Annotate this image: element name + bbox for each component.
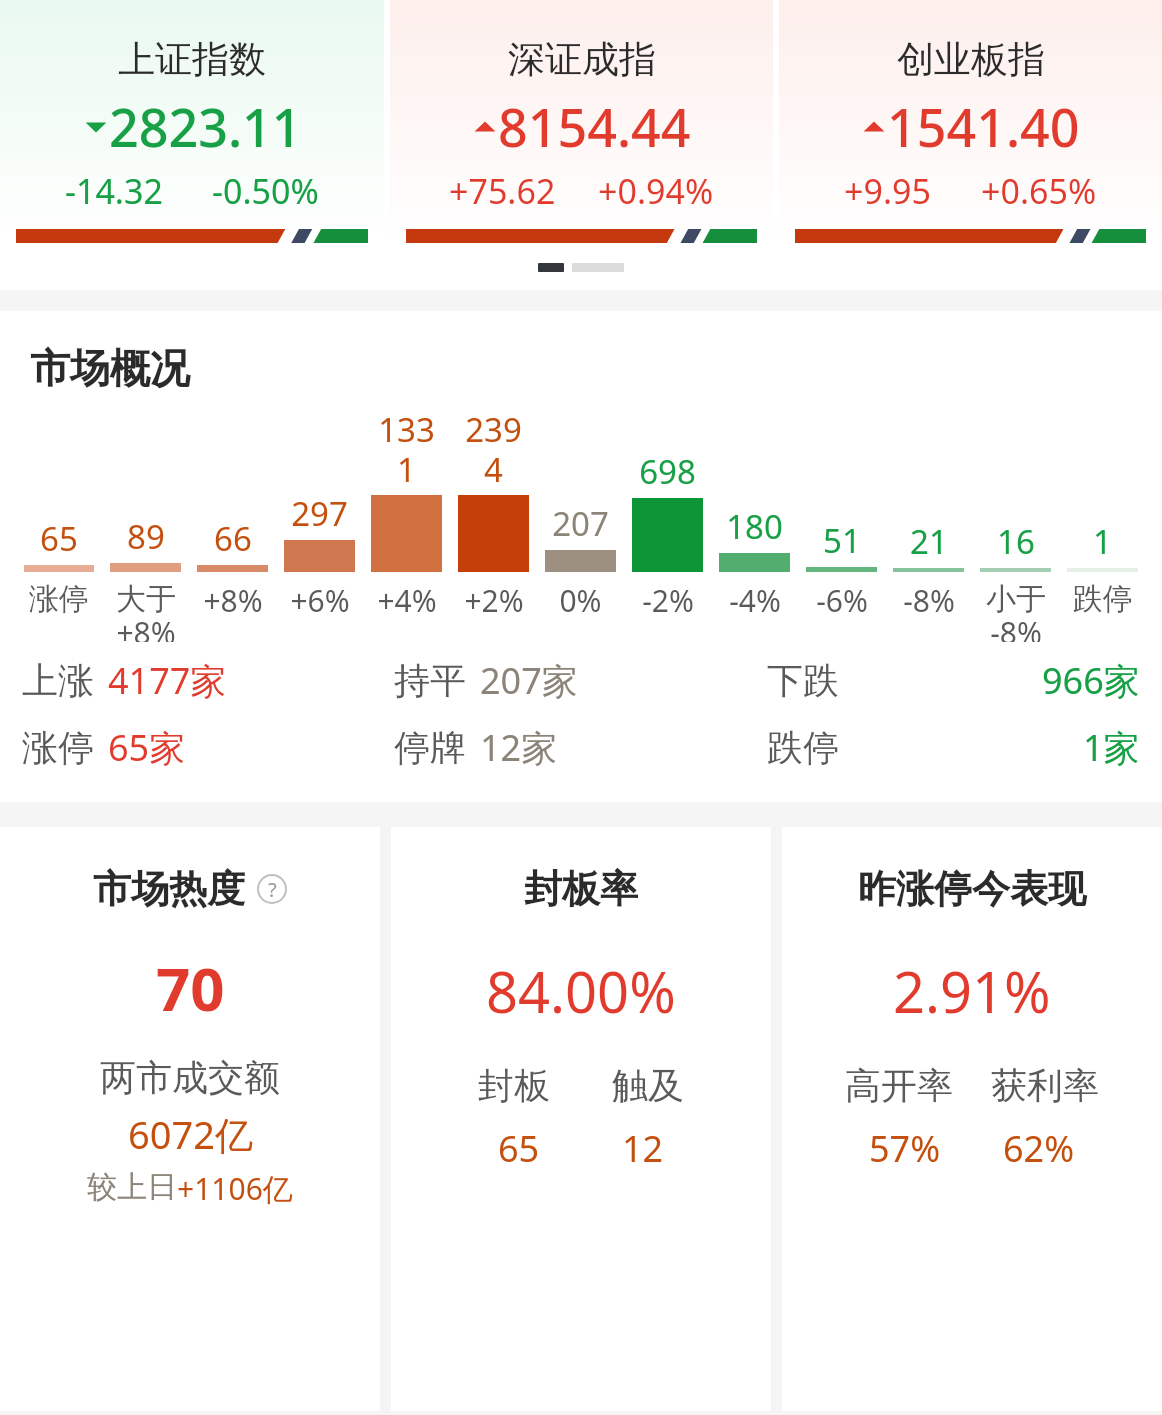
- button[interactable]: 创业板指: [779, 0, 1162, 245]
- staticText: 上涨: [22, 658, 94, 703]
- staticText: -2%: [642, 580, 694, 621]
- staticText: 6072亿: [128, 1108, 253, 1160]
- staticText: 966家: [1042, 656, 1140, 705]
- staticText: +2%: [464, 580, 524, 621]
- button[interactable]: 封板率: [391, 827, 771, 1411]
- button[interactable]: 深证成指: [390, 0, 773, 245]
- staticText: 84.00%: [486, 953, 676, 1029]
- staticText: 2394: [458, 407, 529, 491]
- button[interactable]: 昨涨停今表现: [782, 827, 1162, 1411]
- staticText: 涨停: [22, 725, 94, 770]
- staticText: 16: [997, 519, 1035, 564]
- staticText: 698: [639, 449, 696, 494]
- button[interactable]: 市场热度: [0, 827, 380, 1411]
- button[interactable]: 说明: [257, 874, 287, 904]
- staticText: 51: [823, 518, 861, 563]
- staticText: 较上日: [87, 1168, 177, 1206]
- staticText: -0.50%: [212, 168, 319, 214]
- staticText: +0.94%: [598, 168, 714, 214]
- staticText: 大于 +8%: [116, 580, 176, 642]
- staticText: 12家: [480, 723, 558, 772]
- staticText: 66: [214, 516, 252, 561]
- staticText: 12: [622, 1124, 664, 1173]
- staticText: +8%: [203, 580, 263, 621]
- staticText: 57%: [869, 1124, 941, 1173]
- staticText: 两市成交额: [100, 1055, 280, 1100]
- staticText: 65: [40, 516, 78, 561]
- staticText: 跌停: [1073, 580, 1133, 618]
- staticText: 297: [291, 491, 348, 536]
- staticText: 昨涨停今表现: [858, 865, 1086, 913]
- staticText: 小于 -8%: [986, 580, 1046, 642]
- staticText: 8154.44: [498, 91, 691, 162]
- staticText: 持平: [394, 658, 466, 703]
- staticText: +6%: [290, 580, 350, 621]
- button[interactable]: 上证指数: [0, 0, 384, 245]
- staticText: 70: [156, 947, 225, 1029]
- staticText: 封板率: [524, 865, 638, 913]
- staticText: +4%: [377, 580, 437, 621]
- staticText: 1家: [1083, 723, 1140, 772]
- staticText: 89: [127, 514, 165, 559]
- staticText: +75.62: [449, 168, 556, 214]
- staticText: 深证成指: [508, 36, 656, 83]
- staticText: 1541.40: [887, 91, 1080, 162]
- staticText: +1106亿: [177, 1168, 293, 1209]
- staticText: 2.91%: [893, 953, 1051, 1029]
- staticText: -4%: [729, 580, 781, 621]
- staticText: -6%: [816, 580, 868, 621]
- staticText: 上证指数: [118, 36, 266, 83]
- staticText: 4177家: [108, 656, 227, 705]
- staticText: 停牌: [394, 725, 466, 770]
- staticText: 市场热度: [93, 865, 245, 913]
- staticText: 市场概况: [30, 343, 190, 393]
- staticText: 180: [726, 504, 783, 549]
- staticText: 涨停: [29, 580, 89, 618]
- staticText: -14.32: [65, 168, 163, 214]
- staticText: 207家: [480, 656, 578, 705]
- staticText: 2823.11: [109, 91, 302, 162]
- staticText: 21: [910, 519, 948, 564]
- staticText: 下跌: [767, 658, 839, 703]
- staticText: 高开率: [845, 1063, 953, 1108]
- staticText: 创业板指: [897, 36, 1045, 83]
- staticText: 封板: [478, 1063, 550, 1108]
- staticText: 跌停: [767, 725, 839, 770]
- staticText: +9.95: [844, 168, 931, 214]
- staticText: 62%: [1003, 1124, 1075, 1173]
- staticText: 207: [552, 501, 609, 546]
- staticText: 获利率: [991, 1063, 1099, 1108]
- staticText: 1: [1093, 519, 1112, 564]
- staticText: +0.65%: [981, 168, 1097, 214]
- staticText: 触及: [612, 1063, 684, 1108]
- staticText: 0%: [559, 580, 602, 621]
- staticText: ?: [268, 876, 277, 903]
- staticText: 1331: [371, 407, 442, 491]
- staticText: 65: [498, 1124, 540, 1173]
- staticText: -8%: [903, 580, 955, 621]
- staticText: 65家: [108, 723, 186, 772]
